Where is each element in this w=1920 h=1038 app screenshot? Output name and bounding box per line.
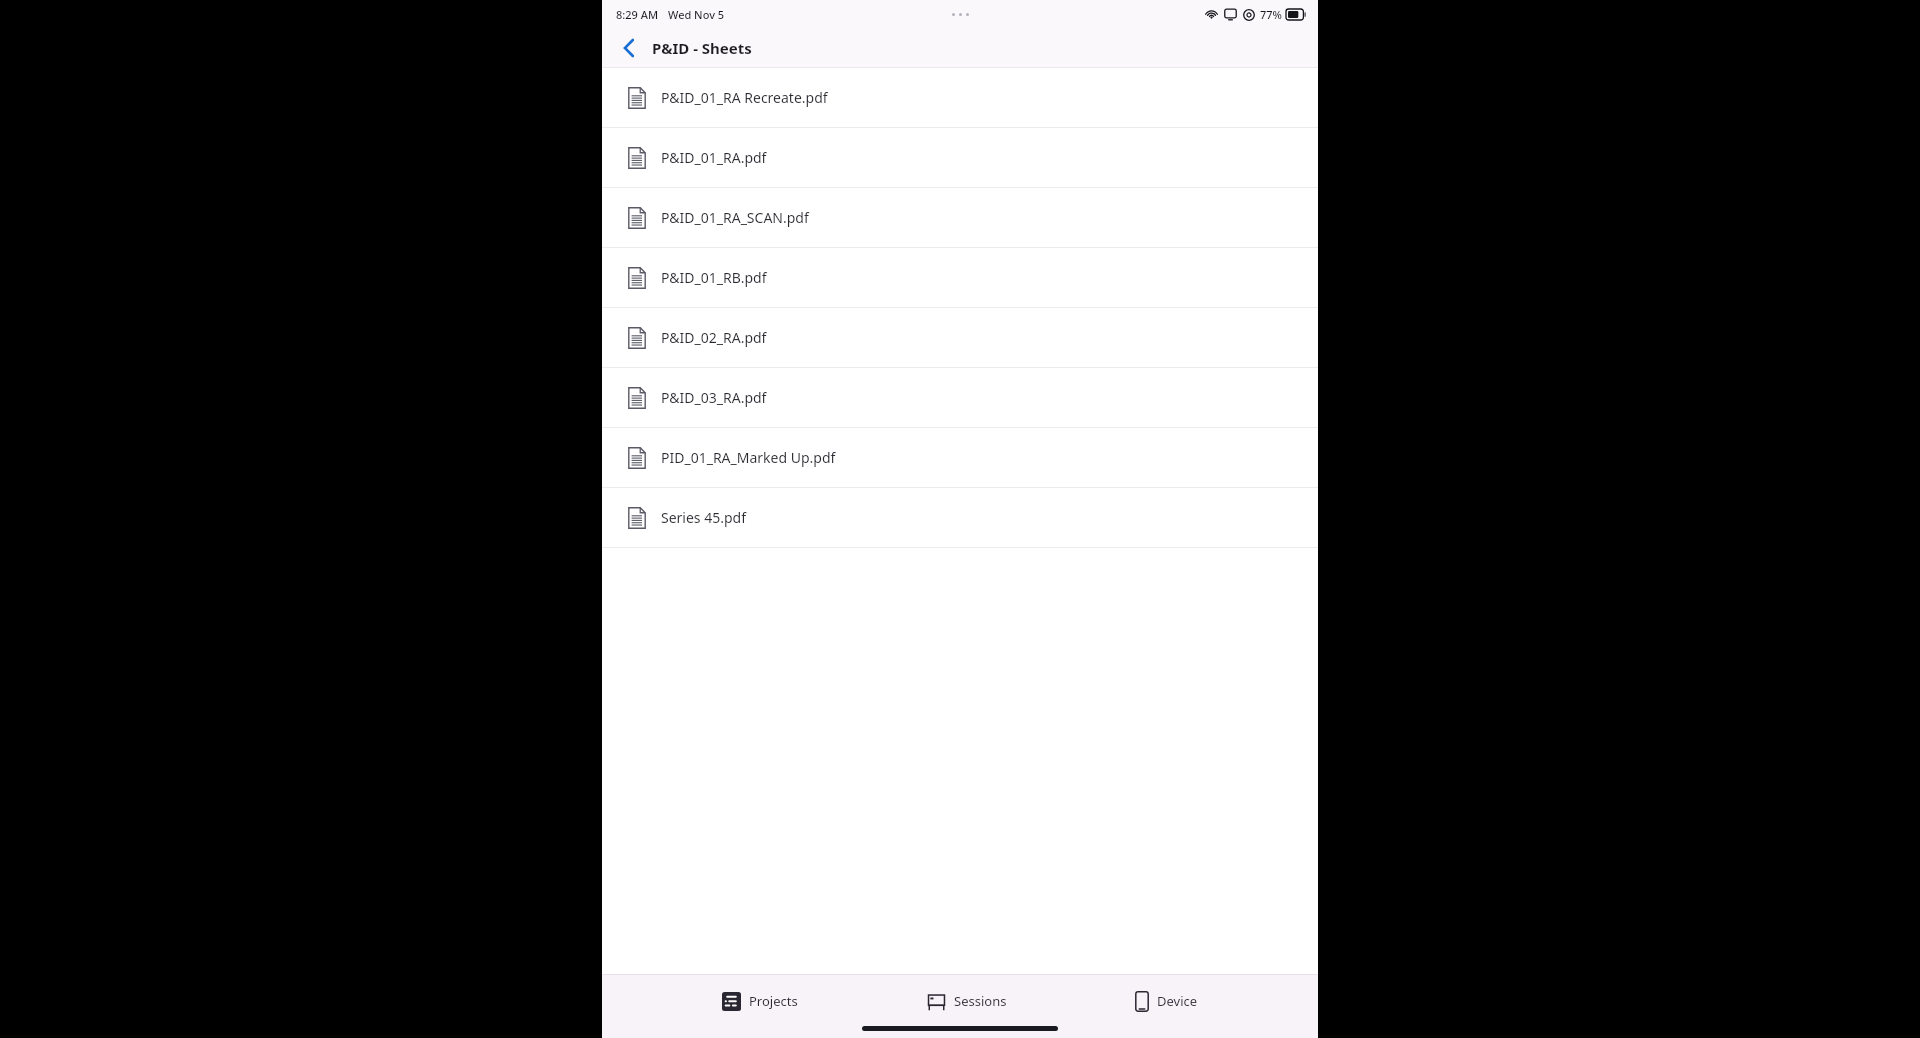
staticText: PID_01_RA_Marked Up.pdf bbox=[661, 448, 836, 467]
button[interactable]: P&ID_02_RA.pdf bbox=[602, 308, 1318, 367]
staticText: 8:29 AM bbox=[616, 7, 659, 22]
staticText: P&ID_01_RB.pdf bbox=[661, 268, 767, 287]
staticText: P&ID_01_RA.pdf bbox=[661, 148, 767, 167]
button[interactable]: P&ID_01_RA Recreate.pdf bbox=[602, 68, 1318, 127]
staticText: P&ID_02_RA.pdf bbox=[661, 328, 767, 347]
button[interactable]: P&ID_01_RB.pdf bbox=[602, 248, 1318, 307]
staticText: Device bbox=[1157, 992, 1198, 1010]
button[interactable]: P&ID_01_RA_SCAN.pdf bbox=[602, 188, 1318, 247]
staticText: Sessions bbox=[954, 992, 1007, 1010]
staticText: Projects bbox=[749, 992, 798, 1010]
staticText: P&ID_01_RA Recreate.pdf bbox=[661, 88, 828, 107]
button[interactable]: Series 45.pdf bbox=[602, 488, 1318, 547]
staticText: Wed Nov 5 bbox=[668, 7, 725, 22]
button[interactable]: Device bbox=[1127, 981, 1206, 1021]
button[interactable]: Back bbox=[612, 31, 646, 65]
staticText: 77% bbox=[1260, 7, 1282, 22]
button[interactable]: PID_01_RA_Marked Up.pdf bbox=[602, 428, 1318, 487]
staticText: P&ID_03_RA.pdf bbox=[661, 388, 767, 407]
staticText: Series 45.pdf bbox=[661, 508, 747, 527]
button[interactable]: Projects bbox=[714, 981, 806, 1021]
staticText: P&ID_01_RA_SCAN.pdf bbox=[661, 208, 809, 227]
button[interactable]: Sessions bbox=[919, 981, 1015, 1021]
button[interactable]: P&ID_03_RA.pdf bbox=[602, 368, 1318, 427]
staticText: P&ID - Sheets bbox=[652, 38, 752, 58]
button[interactable]: P&ID_01_RA.pdf bbox=[602, 128, 1318, 187]
